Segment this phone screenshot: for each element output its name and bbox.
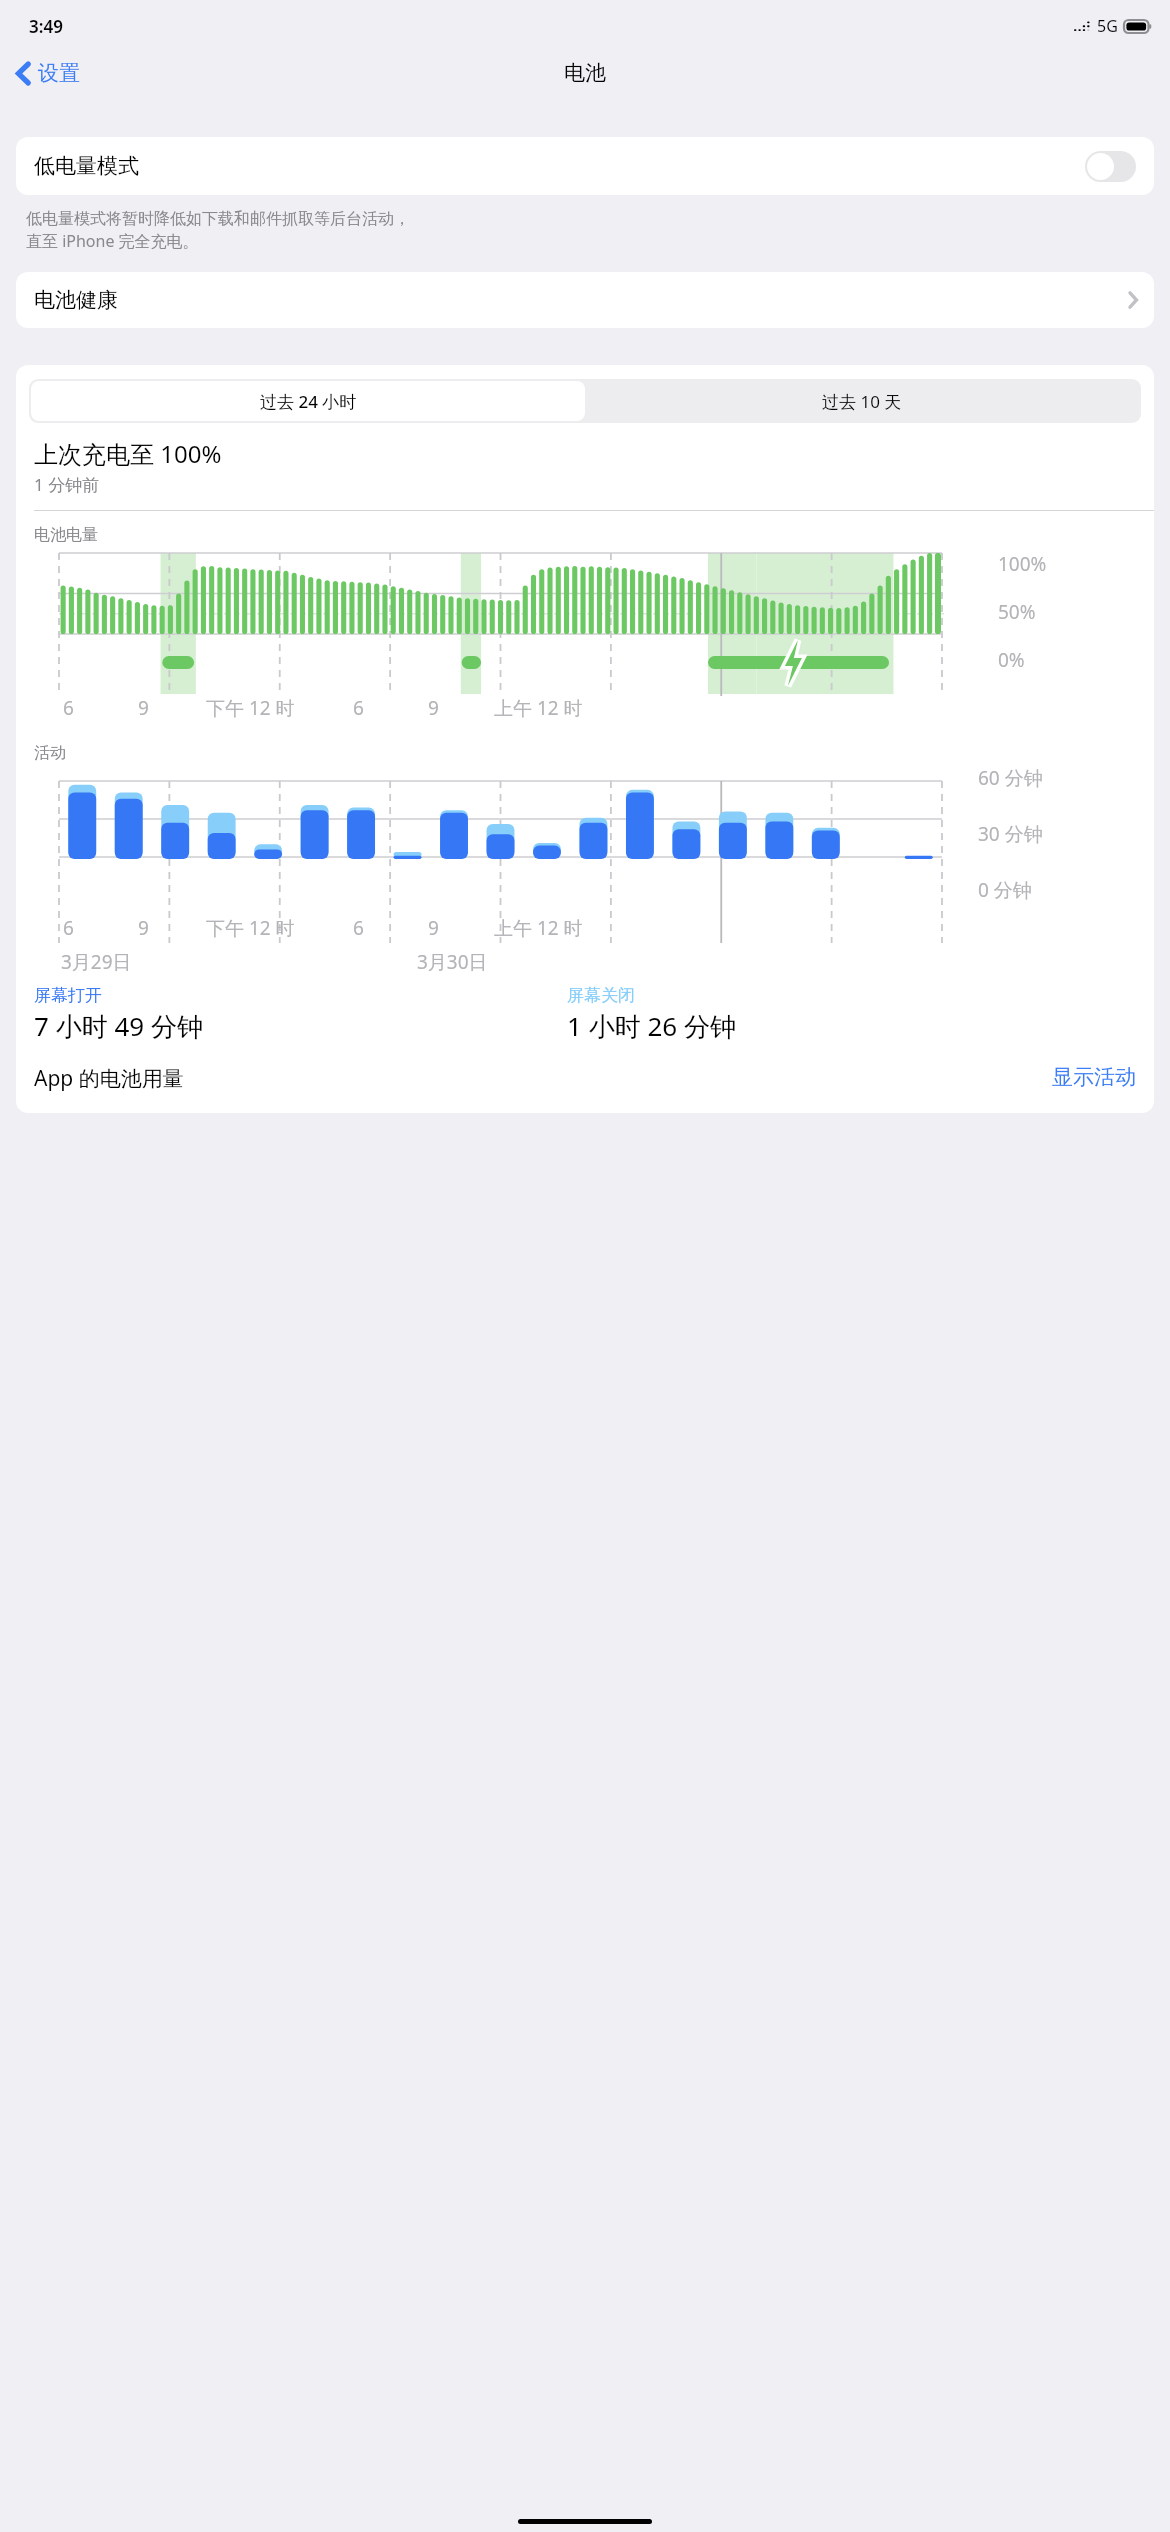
staticText: 下午 12 时 [206, 695, 295, 721]
staticText: 低电量模式 [34, 153, 139, 179]
staticText: 低电量模式将暂时降低如下载和邮件抓取等后台活动， 直至 iPhone 完全充电。 [26, 209, 410, 252]
staticText: 电池电量 [34, 525, 98, 545]
staticText: 9 [138, 915, 149, 941]
staticText: 7 小时 49 分钟 [34, 1008, 203, 1044]
staticText: 3月29日 [61, 949, 132, 975]
staticText: 6 [353, 695, 364, 721]
staticText: 电池健康 [34, 287, 118, 313]
staticText: 6 [63, 915, 74, 941]
staticText: 60 分钟 [978, 765, 1043, 791]
staticText: 3:49 [29, 15, 63, 38]
staticText: 屏幕关闭 [567, 985, 635, 1006]
staticText: 50% [998, 599, 1036, 625]
staticText: 上次充电至 100% [34, 437, 222, 470]
staticText: 30 分钟 [978, 821, 1043, 847]
staticText: 设置 [38, 60, 80, 86]
button[interactable]: 低电量模式 [16, 137, 1154, 195]
staticText: 6 [63, 695, 74, 721]
staticText: 100% [998, 551, 1047, 577]
button[interactable]: 设置 [10, 56, 86, 90]
staticText: 上午 12 时 [494, 695, 583, 721]
staticText: 9 [138, 695, 149, 721]
staticText: 电池 [564, 60, 606, 86]
staticText: 6 [353, 915, 364, 941]
button[interactable]: 过去 24 小时 [31, 381, 585, 421]
staticText: 过去 24 小时 [260, 390, 357, 413]
button[interactable]: 过去 10 天 [585, 381, 1139, 421]
staticText: 1 分钟前 [34, 473, 100, 496]
staticText: 9 [428, 915, 439, 941]
staticText: 活动 [34, 743, 66, 763]
staticText: App 的电池用量 [34, 1064, 184, 1093]
staticText: 过去 10 天 [822, 390, 902, 413]
staticText: 9 [428, 695, 439, 721]
staticText: 0 分钟 [978, 877, 1032, 903]
staticText: 3月30日 [417, 949, 488, 975]
staticText: 上午 12 时 [494, 915, 583, 941]
button[interactable]: 电池健康 [16, 272, 1154, 328]
staticText: 下午 12 时 [206, 915, 295, 941]
staticText: 5G [1097, 15, 1118, 37]
staticText: 1 小时 26 分钟 [567, 1008, 736, 1044]
staticText: 屏幕打开 [34, 985, 102, 1006]
button[interactable]: 显示活动 [1052, 1064, 1136, 1090]
staticText: 0% [998, 647, 1025, 673]
